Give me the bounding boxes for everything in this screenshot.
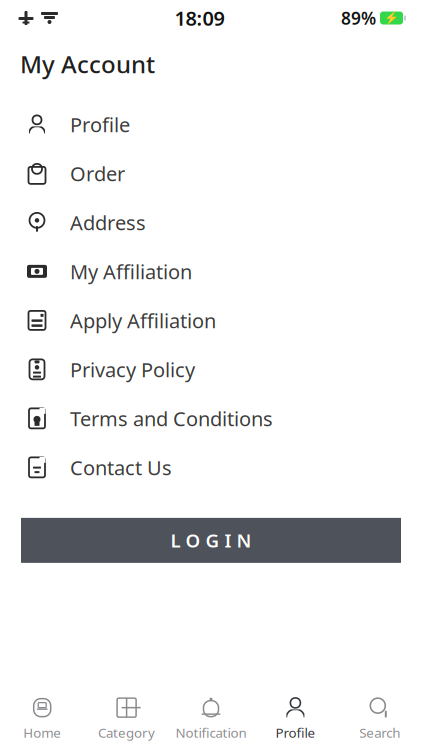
staticText: Privacy Policy [70, 356, 195, 383]
staticText: Address [70, 209, 146, 236]
staticText: 89% [341, 6, 376, 29]
staticText: Notification [175, 724, 246, 741]
staticText: Terms and Conditions [70, 405, 273, 432]
staticText: Search [359, 724, 400, 741]
staticText: Contact Us [70, 454, 172, 481]
button[interactable]: Order [0, 149, 422, 198]
staticText: Profile [275, 724, 315, 741]
button[interactable]: Apply Affiliation [0, 296, 422, 345]
button[interactable]: Profile [0, 100, 422, 149]
button[interactable]: Search [338, 693, 422, 745]
button[interactable]: Privacy Policy [0, 345, 422, 394]
staticText: ⚡ [384, 11, 399, 25]
staticText: Category [98, 724, 155, 741]
button[interactable]: Terms and Conditions [0, 394, 422, 443]
button[interactable]: Contact Us [0, 443, 422, 492]
staticText: Order [70, 160, 125, 187]
button[interactable]: L O G I N [21, 518, 401, 563]
button[interactable]: Address [0, 198, 422, 247]
staticText: My Affiliation [70, 258, 192, 285]
staticText: Profile [70, 111, 130, 138]
staticText: L O G I N [170, 528, 251, 553]
staticText: Home [23, 724, 61, 741]
button[interactable]: Category [84, 693, 169, 745]
staticText: My Account [20, 48, 155, 80]
staticText: 18:09 [174, 5, 224, 31]
button[interactable]: Profile [253, 693, 338, 745]
button[interactable]: Notification [169, 693, 253, 745]
staticText: Apply Affiliation [70, 307, 216, 334]
button[interactable]: My Affiliation [0, 247, 422, 296]
button[interactable]: Home [0, 693, 84, 745]
